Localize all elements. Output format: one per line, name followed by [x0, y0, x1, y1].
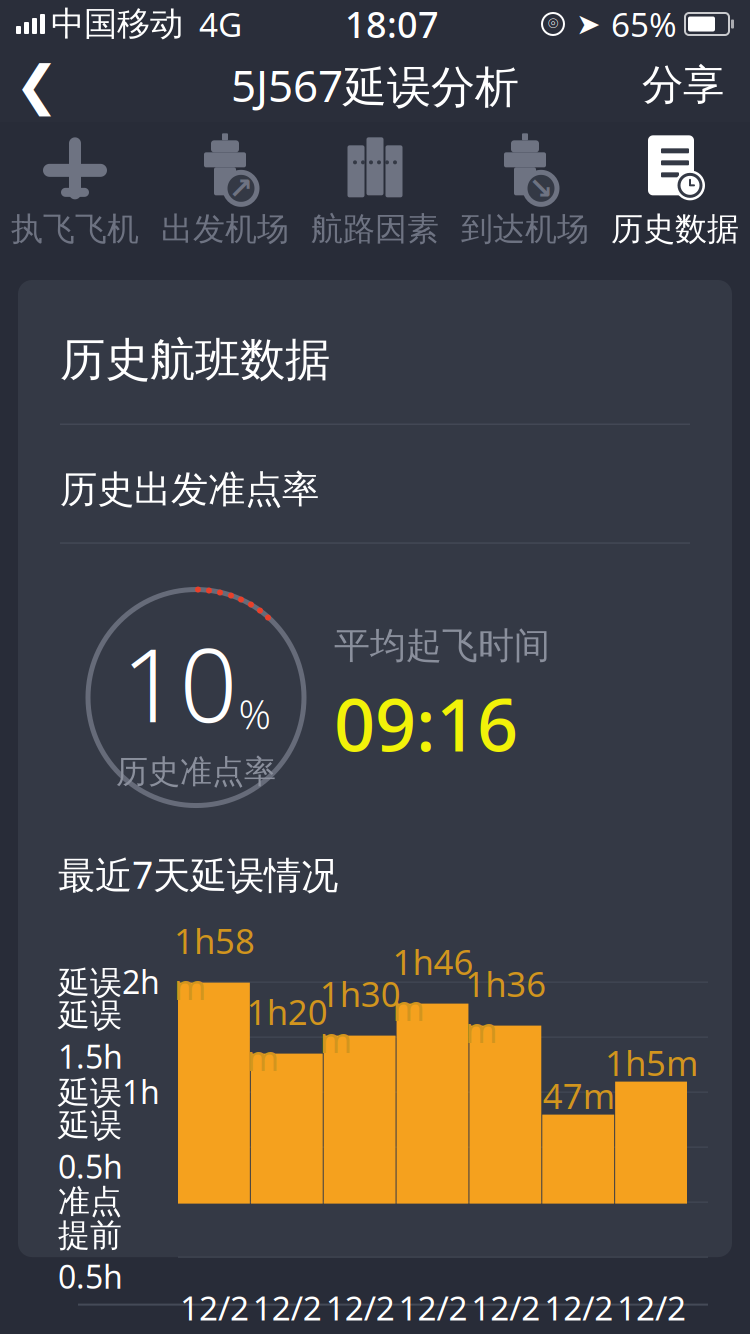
staticText: 历史数据: [611, 209, 739, 249]
staticText: 最近7天延误情况: [58, 849, 338, 899]
staticText: 1h20m: [247, 989, 328, 1081]
staticText: 12/22: [180, 1285, 249, 1334]
staticText: 延误0.5h: [58, 1106, 123, 1187]
staticText: 出发机场: [161, 209, 289, 249]
staticText: ↘: [528, 172, 553, 205]
staticText: 12/27: [544, 1285, 613, 1334]
button[interactable]: 历史数据: [600, 132, 750, 252]
staticText: 到达机场: [461, 209, 589, 249]
staticText: 延误1h: [58, 1070, 160, 1113]
staticText: 12/25: [398, 1285, 467, 1334]
staticText: 提前0.5h: [58, 1216, 123, 1297]
staticText: 平均起飞时间: [334, 624, 550, 668]
staticText: 65%: [611, 2, 677, 46]
staticText: 中国移动: [51, 3, 183, 44]
staticText: 12/28: [617, 1285, 686, 1334]
staticText: 12/24: [326, 1285, 395, 1334]
staticText: 12/23: [253, 1285, 322, 1334]
staticText: ➤: [576, 7, 601, 41]
button[interactable]: 返回: [0, 48, 74, 122]
staticText: 47m: [543, 1073, 615, 1119]
staticText: 准点: [58, 1182, 122, 1221]
staticText: 1h46m: [392, 939, 473, 1031]
staticText: ❮: [14, 55, 59, 115]
button[interactable]: 执飞飞机: [0, 132, 150, 252]
button[interactable]: 航路因素: [300, 132, 450, 252]
staticText: 1h36m: [465, 961, 546, 1053]
staticText: 1h30m: [320, 971, 401, 1063]
staticText: ⌾: [548, 15, 558, 32]
staticText: 4G: [199, 2, 242, 46]
staticText: 10: [121, 616, 237, 750]
staticText: 18:07: [345, 0, 439, 48]
staticText: 09:16: [334, 676, 518, 771]
staticText: 延误2h: [58, 960, 160, 1003]
staticText: ↗: [228, 172, 253, 205]
staticText: 1h58m: [174, 918, 255, 1010]
button[interactable]: ↗: [150, 132, 300, 252]
staticText: 执飞飞机: [11, 209, 139, 249]
staticText: %: [238, 687, 270, 740]
staticText: 5J567延误分析: [231, 56, 519, 114]
staticText: 历史出发准点率: [60, 467, 319, 513]
button[interactable]: ↘: [450, 132, 600, 252]
staticText: 1h5m: [605, 1040, 698, 1086]
staticText: 延误1.5h: [58, 996, 123, 1077]
staticText: 历史准点率: [116, 752, 276, 791]
staticText: 12/26: [471, 1285, 540, 1334]
button[interactable]: 分享: [616, 48, 750, 122]
staticText: 历史航班数据: [60, 332, 330, 388]
staticText: 分享: [642, 60, 724, 110]
staticText: 航路因素: [311, 209, 439, 249]
